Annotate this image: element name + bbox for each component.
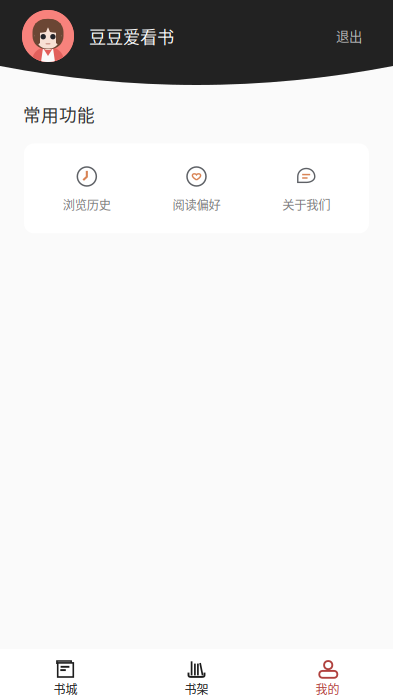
button[interactable]: 浏览历史 (32, 165, 142, 213)
staticText: 我的 (315, 680, 339, 697)
button[interactable]: 阅读偏好 (142, 165, 251, 213)
button[interactable]: 书架 (131, 660, 262, 697)
button[interactable]: 书城 (0, 660, 131, 697)
staticText: 退出 (336, 26, 362, 46)
staticText: 浏览历史 (63, 195, 111, 213)
staticText: 阅读偏好 (172, 195, 220, 213)
staticText: 关于我们 (282, 195, 330, 213)
staticText: 豆豆爱看书 (89, 23, 174, 48)
button[interactable]: 关于我们 (251, 165, 361, 213)
staticText: 书架 (184, 680, 208, 697)
button[interactable]: 我的 (262, 660, 393, 697)
staticText: 常用功能 (23, 101, 95, 126)
staticText: 书城 (53, 680, 77, 697)
button[interactable]: 退出 (328, 20, 370, 52)
